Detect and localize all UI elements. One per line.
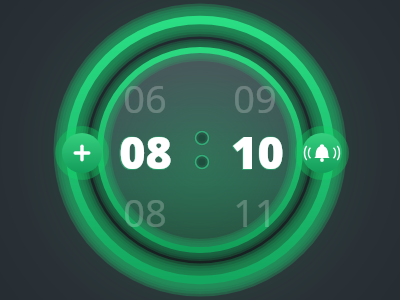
button[interactable]: Add alarm [62, 133, 102, 173]
staticText: 09 [233, 72, 277, 124]
staticText: 08 [123, 186, 167, 238]
staticText: 06 [123, 72, 167, 124]
staticText: 10 [230, 121, 284, 184]
button[interactable]: Set alarm time [105, 55, 295, 245]
staticText: 08 [119, 121, 172, 182]
staticText: 11 [233, 186, 277, 238]
button[interactable]: Alarm sound [302, 133, 342, 173]
staticText: 10 [231, 121, 284, 182]
staticText: 08 [118, 121, 172, 184]
